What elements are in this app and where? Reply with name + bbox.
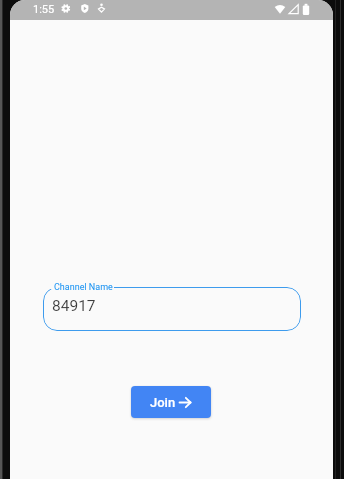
- button[interactable]: Join: [131, 386, 211, 418]
- staticText: Channel Name: [54, 282, 113, 293]
- button[interactable]: 84917: [43, 287, 301, 331]
- staticText: Join: [150, 395, 176, 410]
- staticText: 84917: [52, 297, 96, 315]
- staticText: 1:55: [33, 3, 55, 16]
